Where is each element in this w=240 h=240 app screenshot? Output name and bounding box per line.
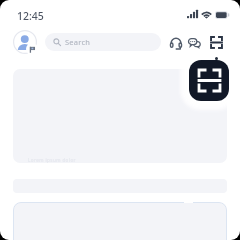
button[interactable] <box>13 202 227 240</box>
button[interactable]: Lorem ipsum dolor <box>13 69 227 163</box>
button[interactable]: Messages <box>186 35 202 51</box>
button[interactable]: Scan <box>208 34 224 50</box>
button[interactable]: Scan QR code <box>189 60 229 101</box>
staticText: Lorem ipsum dolor <box>28 157 76 163</box>
button[interactable]: Support <box>168 35 184 51</box>
button[interactable]: Search <box>45 33 161 51</box>
staticText: 12:45 <box>17 9 44 23</box>
button[interactable]: Profile <box>13 30 37 54</box>
staticText: Search <box>65 37 91 47</box>
